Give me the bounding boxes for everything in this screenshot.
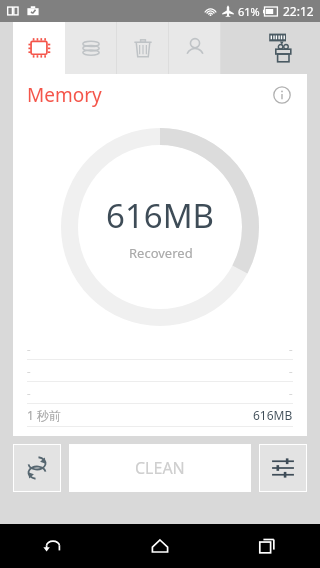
button[interactable]: Home <box>106 524 213 568</box>
staticText: - <box>27 385 31 400</box>
button[interactable]: Refresh <box>13 444 61 492</box>
button[interactable]: CLEAN <box>69 444 251 492</box>
staticText: - <box>289 363 293 378</box>
staticText: 22:12 <box>283 3 314 19</box>
staticText: 616MB <box>253 407 293 423</box>
staticText: Recovered <box>129 244 193 262</box>
button[interactable]: Back <box>0 524 106 568</box>
button[interactable]: Settings <box>259 444 307 492</box>
button[interactable]: Apps tab <box>169 22 221 74</box>
staticText: - <box>27 341 31 356</box>
staticText: 61% <box>238 4 260 19</box>
button[interactable]: Information <box>271 84 293 106</box>
staticText: CLEAN <box>135 457 185 479</box>
staticText: 616MB <box>106 193 215 238</box>
staticText: - <box>289 341 293 356</box>
staticText: - <box>289 385 293 400</box>
staticText: Memory <box>27 82 102 108</box>
button[interactable]: New gift <box>266 31 300 65</box>
button[interactable]: Storage tab <box>65 22 117 74</box>
button[interactable]: Junk tab <box>117 22 169 74</box>
staticText: - <box>27 363 31 378</box>
staticText: 1 秒前 <box>27 407 61 423</box>
button[interactable]: Memory tab <box>13 22 65 74</box>
button[interactable]: Recent apps <box>213 524 320 568</box>
